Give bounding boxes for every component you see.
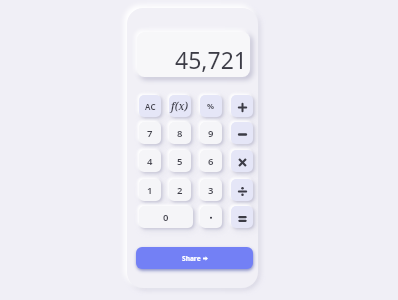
staticText: % xyxy=(207,101,215,112)
staticText: 3 xyxy=(208,184,214,197)
button[interactable]: AC xyxy=(139,95,161,117)
staticText: 45,721 xyxy=(137,44,247,75)
staticText: Share xyxy=(182,254,201,263)
button[interactable]: 5 xyxy=(169,150,191,172)
button[interactable]: 0 xyxy=(139,206,193,228)
button[interactable]: 1 xyxy=(139,179,161,201)
staticText: 9 xyxy=(208,127,214,140)
staticText: 0 xyxy=(163,211,169,224)
button[interactable]: 8 xyxy=(169,122,191,144)
staticText: 4 xyxy=(147,155,153,168)
staticText: 1 xyxy=(147,184,153,197)
staticText: 7 xyxy=(147,127,153,140)
button[interactable]: Share xyxy=(136,247,253,269)
staticText: 5 xyxy=(177,155,183,168)
button[interactable]: Plus xyxy=(231,95,253,117)
button[interactable]: 3 xyxy=(200,179,222,201)
button[interactable]: 7 xyxy=(139,122,161,144)
button[interactable]: 9 xyxy=(200,122,222,144)
button[interactable]: 6 xyxy=(200,150,222,172)
staticText: 8 xyxy=(177,127,183,140)
button[interactable]: % xyxy=(200,95,222,117)
staticText: f(x) xyxy=(171,99,189,113)
button[interactable]: Decimal point xyxy=(200,206,222,228)
button[interactable]: Divide xyxy=(231,179,253,201)
staticText: AC xyxy=(145,101,156,112)
button[interactable]: Minus xyxy=(231,122,253,144)
button[interactable]: Multiply xyxy=(231,150,253,172)
button[interactable]: 4 xyxy=(139,150,161,172)
button[interactable]: f(x) xyxy=(169,95,191,117)
staticText: 6 xyxy=(208,155,214,168)
staticText: 2 xyxy=(177,184,183,197)
button[interactable]: 2 xyxy=(169,179,191,201)
button[interactable]: Equals xyxy=(231,206,253,228)
